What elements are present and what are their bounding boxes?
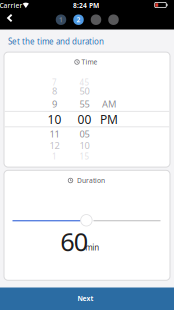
staticText: AM — [102, 98, 116, 110]
staticText: Duration — [77, 176, 105, 185]
staticText: 55 — [79, 98, 89, 110]
staticText: Next — [77, 294, 93, 303]
staticText: 05 — [79, 128, 89, 140]
staticText: 10 — [79, 139, 89, 152]
staticText: 60 — [60, 225, 88, 258]
staticText: 15 — [79, 151, 89, 162]
staticText: 45 — [79, 77, 89, 88]
staticText: 11 — [49, 128, 59, 140]
button[interactable]: Back — [0, 0, 18, 29]
staticText: 1 — [52, 151, 57, 162]
staticText: Set the time and duration — [8, 36, 104, 47]
staticText: 12 — [49, 139, 59, 152]
staticText: 9 — [52, 98, 57, 110]
staticText: min — [85, 242, 99, 253]
staticText: Time — [81, 58, 97, 66]
staticText: 8:24 PM — [73, 1, 99, 10]
staticText: 8 — [52, 85, 57, 97]
button[interactable]: Next — [0, 287, 174, 310]
staticText: 50 — [79, 85, 89, 97]
staticText: 7 — [52, 77, 57, 88]
staticText: PM — [100, 111, 118, 127]
staticText: 00 — [77, 111, 91, 127]
staticText: 2 — [76, 15, 80, 24]
staticText: 10 — [47, 111, 61, 127]
staticText: Carrier — [0, 1, 22, 10]
staticText: 1 — [59, 15, 63, 24]
